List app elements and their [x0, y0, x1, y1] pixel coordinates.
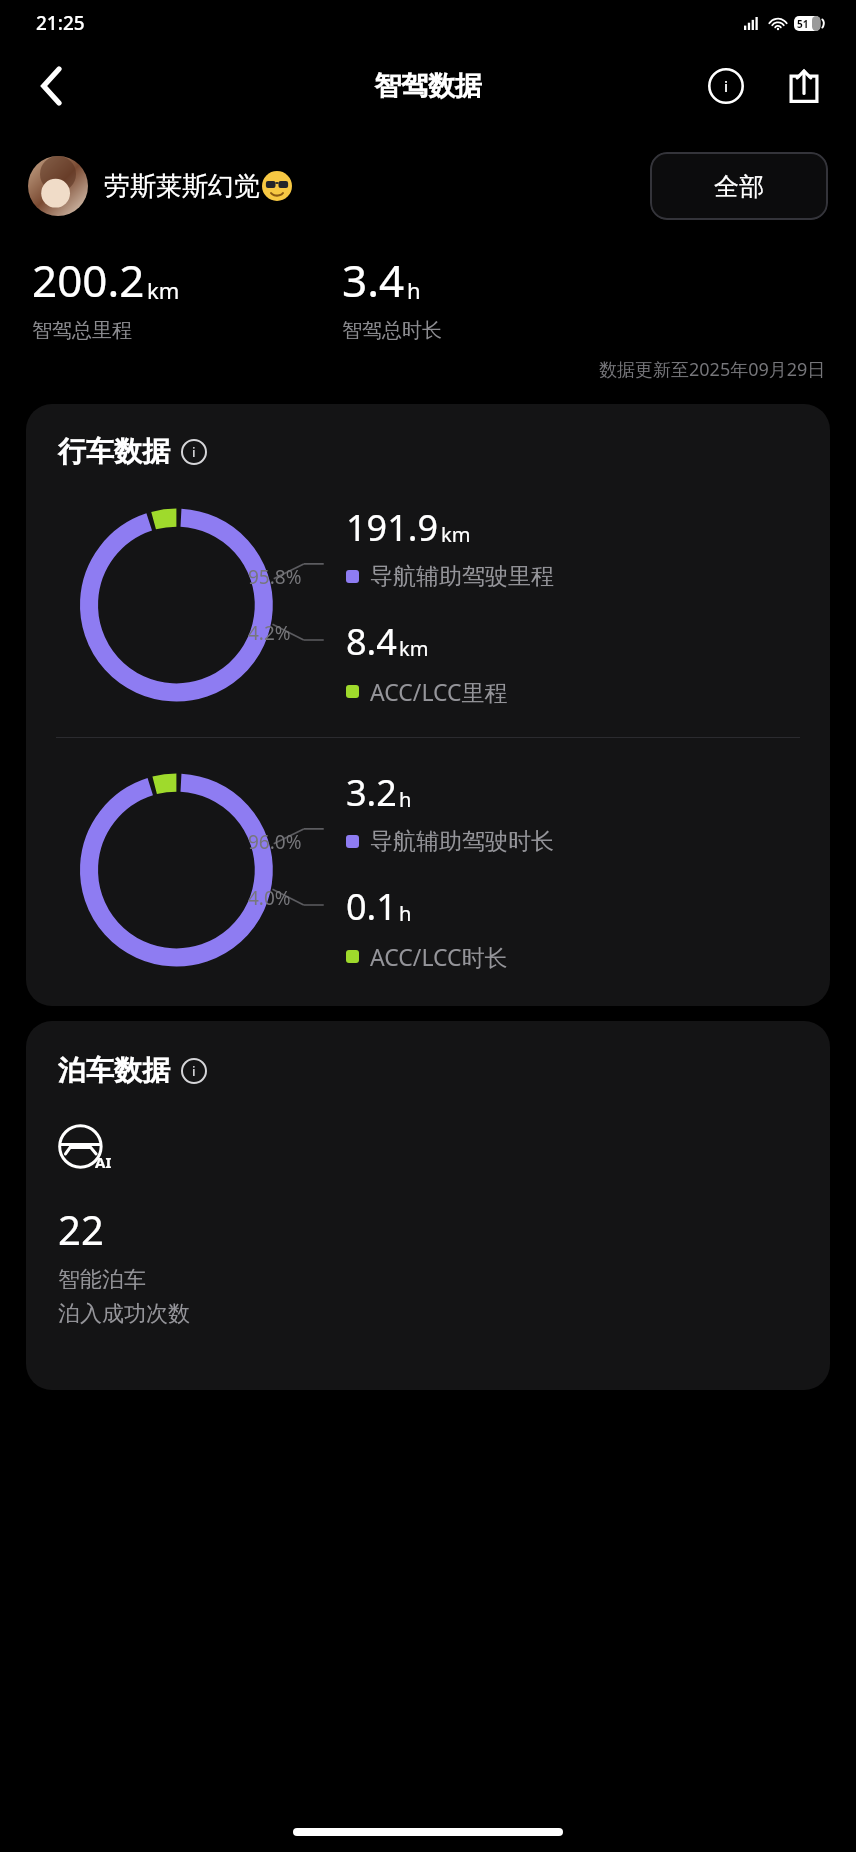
staticText: 泊入成功次数: [58, 1300, 190, 1328]
staticText: km: [147, 275, 180, 305]
staticText: km: [399, 635, 429, 662]
staticText: 全部: [714, 171, 764, 202]
staticText: h: [407, 275, 421, 305]
button[interactable]: 全部: [650, 152, 828, 220]
staticText: 22: [58, 1202, 104, 1256]
staticText: 智驾总时长: [342, 318, 442, 343]
button[interactable]: Back: [26, 60, 78, 112]
button[interactable]: Info: [698, 58, 754, 114]
staticText: 导航辅助驾驶时长: [370, 827, 554, 856]
staticText: 智能泊车: [58, 1266, 146, 1294]
staticText: i: [192, 443, 196, 461]
staticText: h: [399, 900, 412, 927]
staticText: 191.9: [346, 503, 439, 552]
staticText: 导航辅助驾驶里程: [370, 562, 554, 591]
button[interactable]: Share: [776, 58, 832, 114]
staticText: 行车数据: [58, 434, 170, 469]
staticText: 0.1: [346, 882, 397, 931]
button[interactable]: 行车数据: [26, 404, 830, 1006]
staticText: 3.2: [346, 768, 397, 817]
button[interactable]: 泊车数据: [26, 1021, 830, 1390]
button[interactable]: 劳斯莱斯幻觉: [28, 156, 292, 216]
staticText: 泊车数据: [58, 1053, 170, 1088]
staticText: 智驾数据: [374, 69, 482, 103]
staticText: 95.8%: [248, 564, 302, 590]
staticText: 4.2%: [248, 620, 291, 646]
staticText: 200.2: [32, 250, 145, 310]
staticText: 21:25: [36, 10, 85, 36]
staticText: 3.4: [342, 250, 405, 310]
staticText: 4.0%: [248, 885, 291, 911]
staticText: ACC/LCC里程: [370, 676, 508, 707]
staticText: 数据更新至2025年09月29日: [599, 357, 826, 382]
staticText: 劳斯莱斯幻觉: [104, 170, 260, 203]
staticText: i: [724, 76, 729, 96]
staticText: km: [441, 521, 471, 548]
staticText: 96.0%: [248, 829, 302, 855]
staticText: h: [399, 786, 412, 813]
staticText: 51: [797, 17, 809, 31]
staticText: ACC/LCC时长: [370, 941, 508, 972]
staticText: AI: [95, 1152, 112, 1172]
staticText: i: [192, 1062, 196, 1080]
staticText: 8.4: [346, 617, 397, 666]
staticText: 智驾总里程: [32, 318, 132, 343]
